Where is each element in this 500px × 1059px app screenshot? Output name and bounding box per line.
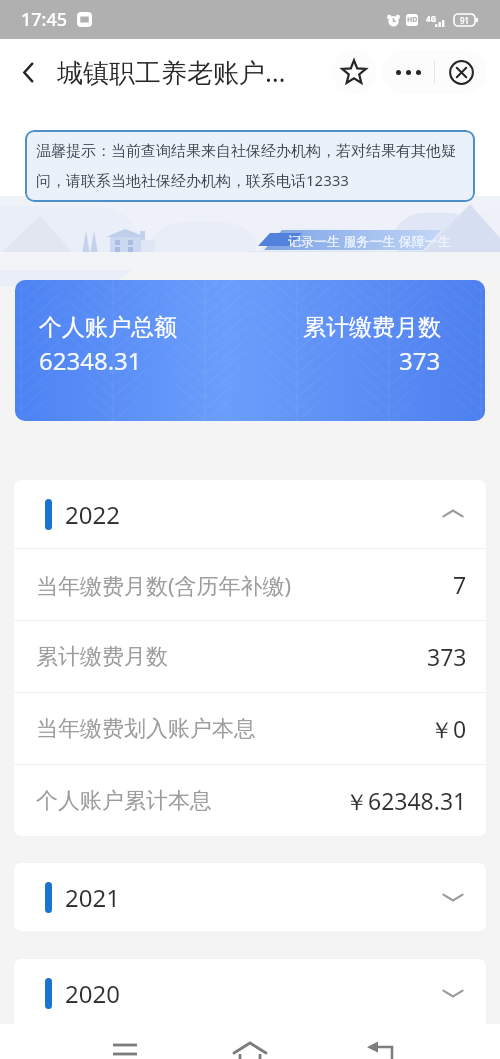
staticText: 2021 xyxy=(65,881,120,914)
staticText: 373 xyxy=(427,641,467,672)
staticText: 91 xyxy=(460,15,470,26)
staticText: 累计缴费月数 xyxy=(36,643,168,671)
button[interactable]: 2021 xyxy=(14,863,486,931)
staticText: HD xyxy=(407,15,418,25)
staticText: 累计缴费月数 xyxy=(303,313,441,342)
staticText: 4G xyxy=(426,13,437,24)
button[interactable]: 2020 xyxy=(14,959,486,1027)
button[interactable]: 个人账户累计本息 xyxy=(14,765,486,836)
button[interactable]: Back xyxy=(340,1024,420,1059)
button[interactable]: 当年缴费月数(含历年补缴) xyxy=(14,549,486,620)
staticText: 个人账户累计本息 xyxy=(36,787,212,815)
button[interactable]: Recent apps xyxy=(85,1024,165,1059)
staticText: 2022 xyxy=(65,498,120,531)
staticText: 62348.31 xyxy=(39,344,142,377)
staticText: 个人账户总额 xyxy=(39,313,177,342)
staticText: 7 xyxy=(453,569,467,600)
staticText: 373 xyxy=(399,344,441,377)
button[interactable]: 当年缴费划入账户本息 xyxy=(14,693,486,764)
staticText: 温馨提示：当前查询结果来自社保经办机构，若对结果有其他疑问，请联系当地社保经办机… xyxy=(36,142,471,190)
staticText: 记录一生 服务一生 保障一生 xyxy=(288,232,451,250)
staticText: 17:45 xyxy=(21,7,68,32)
button[interactable]: Favorite xyxy=(332,50,376,94)
button[interactable]: Back xyxy=(8,52,48,92)
staticText: ￥0 xyxy=(430,713,467,744)
staticText: 当年缴费划入账户本息 xyxy=(36,715,256,743)
button[interactable]: 2022 xyxy=(14,480,486,548)
staticText: 当年缴费月数(含历年补缴) xyxy=(36,570,292,600)
button[interactable]: Home xyxy=(210,1024,290,1059)
staticText: 2020 xyxy=(65,977,120,1010)
button[interactable]: Close xyxy=(435,50,487,94)
button[interactable]: More options xyxy=(382,50,434,94)
staticText: ￥62348.31 xyxy=(345,785,467,816)
staticText: 城镇职工养老账户… xyxy=(57,54,286,90)
button[interactable]: 累计缴费月数 xyxy=(14,621,486,692)
